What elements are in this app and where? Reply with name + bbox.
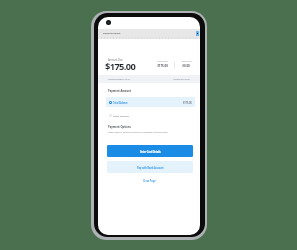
staticText: Invoice #2179047 [160, 78, 190, 81]
button[interactable]: Info [196, 31, 199, 36]
button[interactable]: Total Balance [106, 97, 195, 107]
staticText: Total Balance [113, 101, 128, 104]
staticText: Payment Amount [108, 89, 132, 93]
staticText: Close Page [143, 179, 156, 182]
staticText: Total Amount [157, 60, 168, 62]
button[interactable]: Pay with Bank Account [107, 161, 193, 173]
staticText: Enter Card Details [140, 150, 161, 153]
button[interactable]: Enter Card Details [107, 145, 193, 157]
staticText: Submit Payment [103, 32, 121, 35]
staticText: $175.00 [105, 60, 136, 73]
staticText: Please select a payment method to comple… [108, 131, 168, 134]
button[interactable]: Close Page [133, 176, 165, 185]
staticText: Invoice Expires in 15:47 [108, 78, 130, 81]
staticText: Payment Options [108, 125, 131, 129]
staticText: Other amount [113, 114, 129, 117]
staticText: Amount Due [108, 58, 123, 62]
staticText: $0.00 [182, 64, 190, 68]
staticText: Amount Paid [181, 60, 192, 62]
staticText: Pay with Bank Account [137, 166, 164, 169]
staticText: $175.00 [183, 101, 192, 104]
button[interactable]: Other amount [106, 110, 195, 120]
staticText: $175.00 [157, 64, 168, 68]
